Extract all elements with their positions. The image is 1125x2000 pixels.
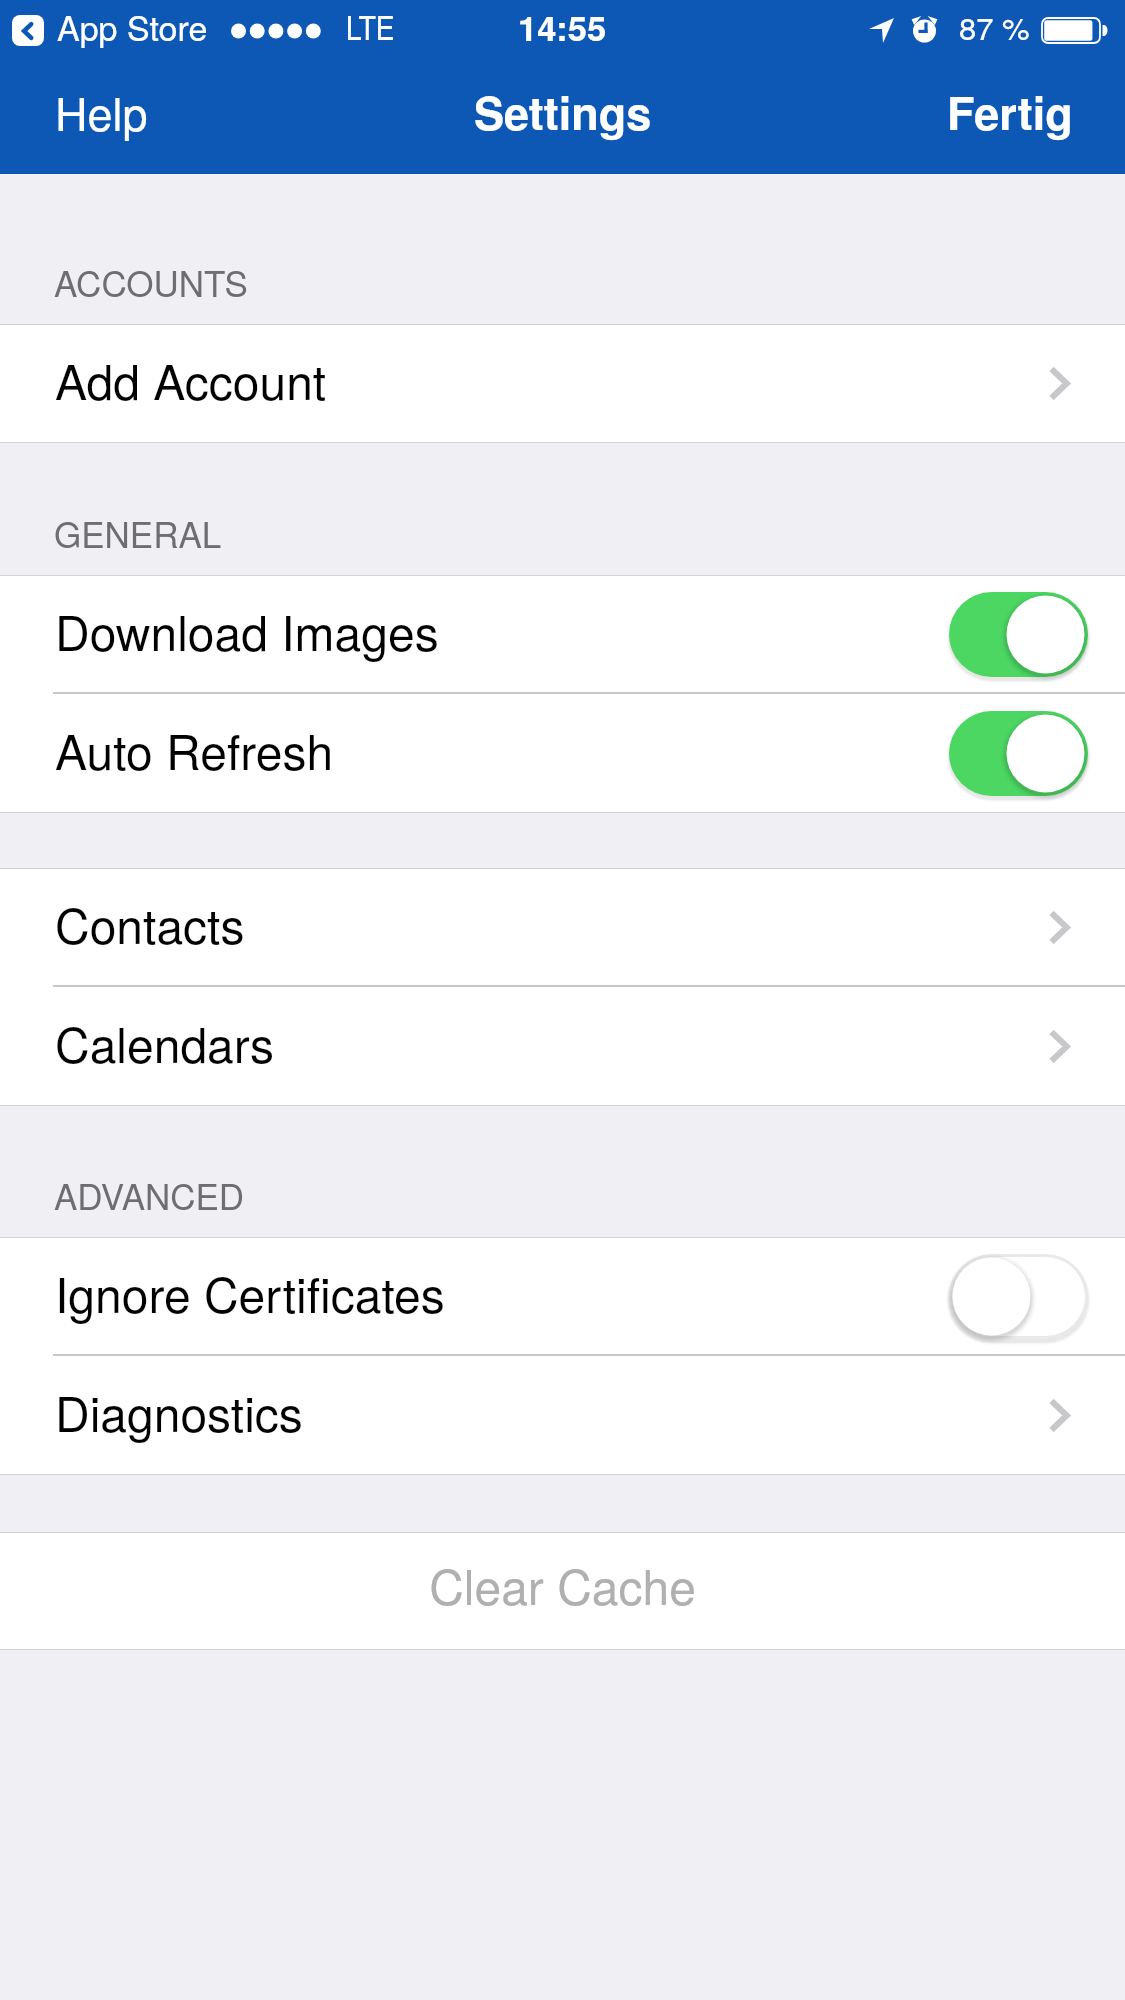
staticText: 87 %	[959, 4, 1030, 48]
button[interactable]: Contacts	[0, 868, 1125, 987]
button[interactable]: Auto Refresh	[0, 694, 1125, 813]
staticText: Clear Cache	[429, 1550, 696, 1619]
staticText: 14:55	[518, 2, 607, 51]
staticText: GENERAL	[54, 508, 222, 558]
button[interactable]: Add Account	[0, 324, 1125, 443]
button[interactable]: Diagnostics	[0, 1356, 1125, 1475]
button[interactable]: Download Images on	[941, 584, 1096, 685]
staticText: App Store	[57, 2, 208, 51]
staticText: Add Account	[55, 345, 327, 414]
staticText: Calendars	[55, 1008, 274, 1077]
button[interactable]: Help	[0, 61, 203, 173]
staticText: Download Images	[55, 596, 439, 665]
button[interactable]: Calendars	[0, 987, 1125, 1106]
staticText: Ignore Certificates	[55, 1258, 445, 1327]
staticText: Contacts	[55, 889, 245, 958]
button[interactable]: Clear Cache	[0, 1532, 1125, 1650]
staticText: ADVANCED	[54, 1170, 245, 1220]
staticText: Diagnostics	[55, 1377, 303, 1446]
staticText: LTE	[346, 3, 395, 50]
other: Alarm	[912, 16, 937, 44]
staticText: Settings	[474, 79, 652, 143]
staticText: Fertig	[947, 79, 1073, 143]
staticText: Help	[55, 79, 148, 143]
button[interactable]: Auto Refresh on	[941, 703, 1096, 804]
other: Location	[869, 18, 894, 43]
button[interactable]: Download Images	[0, 575, 1125, 694]
button[interactable]: Ignore Certificates	[0, 1237, 1125, 1356]
other: Battery 87 percent	[1041, 17, 1108, 44]
other: Back to App Store	[12, 15, 44, 46]
staticText: Auto Refresh	[55, 715, 334, 784]
button[interactable]: Fertig	[890, 61, 1125, 173]
staticText: ACCOUNTS	[54, 257, 248, 307]
button[interactable]: Ignore Certificates off	[941, 1246, 1096, 1347]
